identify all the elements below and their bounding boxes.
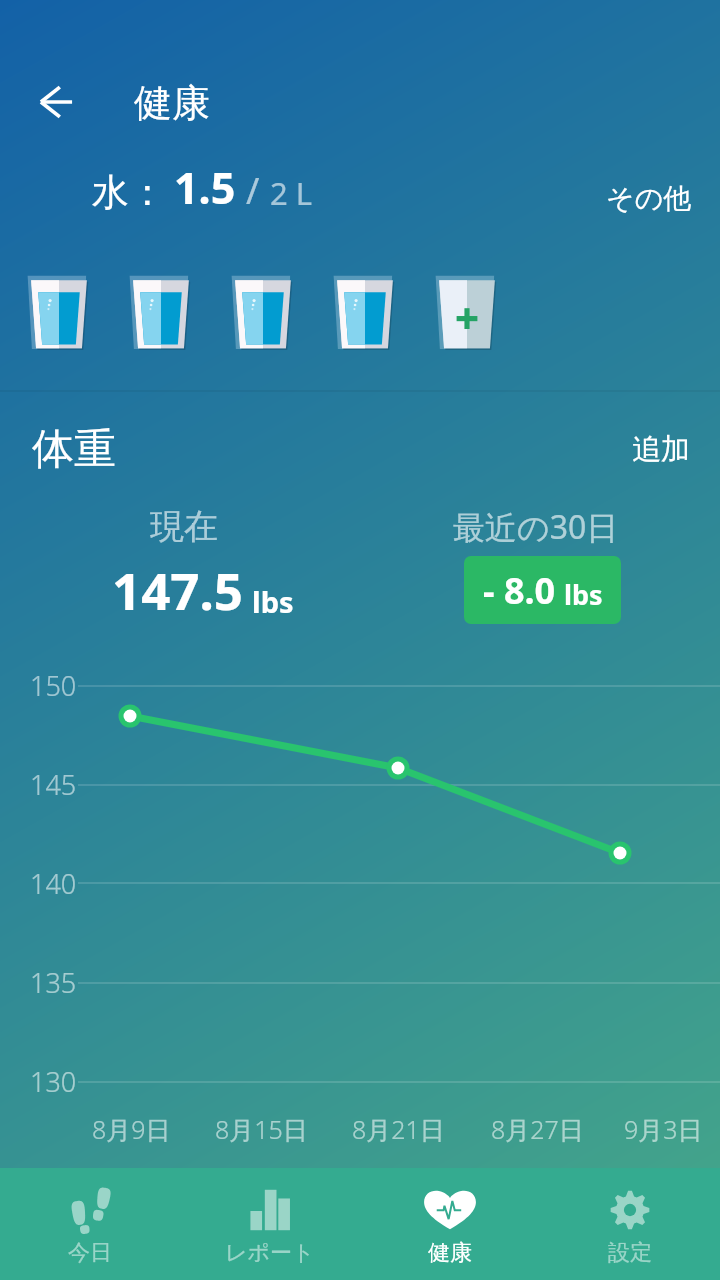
- button[interactable]: Add water: [434, 274, 500, 356]
- staticText: 8月21日: [352, 1112, 445, 1146]
- staticText: 145: [30, 766, 77, 803]
- button[interactable]: レポート: [180, 1168, 360, 1280]
- staticText: 設定: [608, 1239, 652, 1267]
- staticText: - 8.0: [483, 566, 556, 615]
- button[interactable]: [128, 274, 194, 356]
- button[interactable]: - 8.0: [464, 556, 621, 624]
- staticText: 150: [30, 667, 77, 704]
- staticText: 9月3日: [624, 1112, 703, 1146]
- staticText: 健康: [134, 79, 210, 127]
- staticText: 追加: [632, 431, 690, 468]
- button[interactable]: [26, 274, 92, 356]
- staticText: 8月15日: [215, 1112, 308, 1146]
- staticText: レポート: [225, 1239, 315, 1267]
- staticText: 130: [30, 1063, 77, 1100]
- staticText: /: [246, 166, 260, 215]
- staticText: lbs: [252, 582, 294, 621]
- button[interactable]: 今日: [0, 1168, 180, 1280]
- staticText: 147.5: [112, 555, 244, 624]
- staticText: 健康: [428, 1239, 472, 1267]
- staticText: 今日: [68, 1239, 112, 1267]
- staticText: 1.5: [174, 158, 236, 217]
- button[interactable]: [230, 274, 296, 356]
- staticText: 体重: [32, 423, 116, 476]
- button[interactable]: その他: [606, 181, 692, 216]
- button[interactable]: [332, 274, 398, 356]
- staticText: 水：: [92, 169, 166, 216]
- staticText: 135: [30, 964, 77, 1001]
- staticText: その他: [606, 181, 692, 216]
- staticText: lbs: [564, 576, 603, 613]
- button[interactable]: 設定: [540, 1168, 720, 1280]
- button[interactable]: Back: [20, 67, 92, 139]
- button[interactable]: 追加: [632, 431, 690, 468]
- staticText: 8月27日: [491, 1112, 584, 1146]
- staticText: 最近の30日: [453, 505, 619, 549]
- staticText: 140: [30, 865, 77, 902]
- staticText: 2 L: [270, 172, 313, 214]
- staticText: 現在: [150, 505, 218, 548]
- staticText: 8月9日: [92, 1112, 171, 1146]
- button[interactable]: 健康: [360, 1168, 540, 1280]
